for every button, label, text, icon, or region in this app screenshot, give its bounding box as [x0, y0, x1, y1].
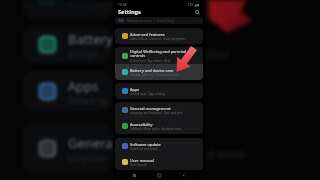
staticText: Language and keyboard · Date and time	[130, 111, 183, 115]
staticText: Storage · M	[68, 48, 113, 59]
staticText: Accessibility	[130, 122, 153, 127]
button[interactable]: General management	[115, 102, 203, 118]
staticText: Manage accounts | SmartThings	[127, 19, 175, 23]
staticText: d time	[206, 145, 245, 163]
button[interactable]: Manage accounts | SmartThings	[115, 17, 203, 24]
staticText: General management	[130, 106, 171, 111]
staticText: Apps	[130, 87, 140, 92]
staticText: Apps	[68, 77, 99, 95]
button[interactable]: Apps	[115, 83, 203, 99]
button[interactable]: Software update	[115, 138, 203, 154]
staticText: Software update	[130, 142, 161, 147]
staticText: Settings	[118, 8, 141, 16]
button[interactable]: Search	[194, 9, 201, 16]
staticText: Battery	[68, 30, 113, 48]
staticText: Language	[68, 152, 106, 163]
button[interactable]: Home	[156, 172, 163, 179]
button[interactable]: Battery and device care	[115, 64, 203, 80]
button[interactable]: User manual	[115, 154, 203, 170]
staticText: Default ap	[68, 95, 108, 106]
staticText: Battery and device care	[130, 68, 174, 73]
staticText: User manual	[130, 158, 154, 163]
staticText: tion	[206, 45, 230, 63]
staticText: Android Auto · Gestures · Video brightne…	[130, 37, 186, 41]
staticText: Download and install	[130, 147, 158, 151]
staticText: Storage · Memory · Device protection	[130, 73, 179, 77]
staticText: Digital Wellbeing and parental controls	[130, 49, 200, 59]
button[interactable]: Recents	[131, 172, 138, 179]
staticText: Default apps · App settings	[130, 92, 166, 96]
button[interactable]: Advanced features	[115, 28, 203, 44]
button[interactable]: Digital Wellbeing and parental controls	[115, 47, 203, 64]
button[interactable]: Back	[180, 172, 187, 179]
staticText: Genera	[68, 134, 113, 152]
staticText: LTE ◢ ▮	[188, 2, 200, 6]
staticText: User manual	[130, 163, 147, 167]
staticText: Advanced features	[130, 32, 165, 37]
staticText: TalkBack · Mono audio · Assistant menu	[130, 127, 182, 131]
staticText: Screen time · App timers · Bedt	[130, 59, 171, 63]
button[interactable]: Accessibility	[115, 118, 203, 134]
staticText: 10:38	[118, 2, 127, 6]
